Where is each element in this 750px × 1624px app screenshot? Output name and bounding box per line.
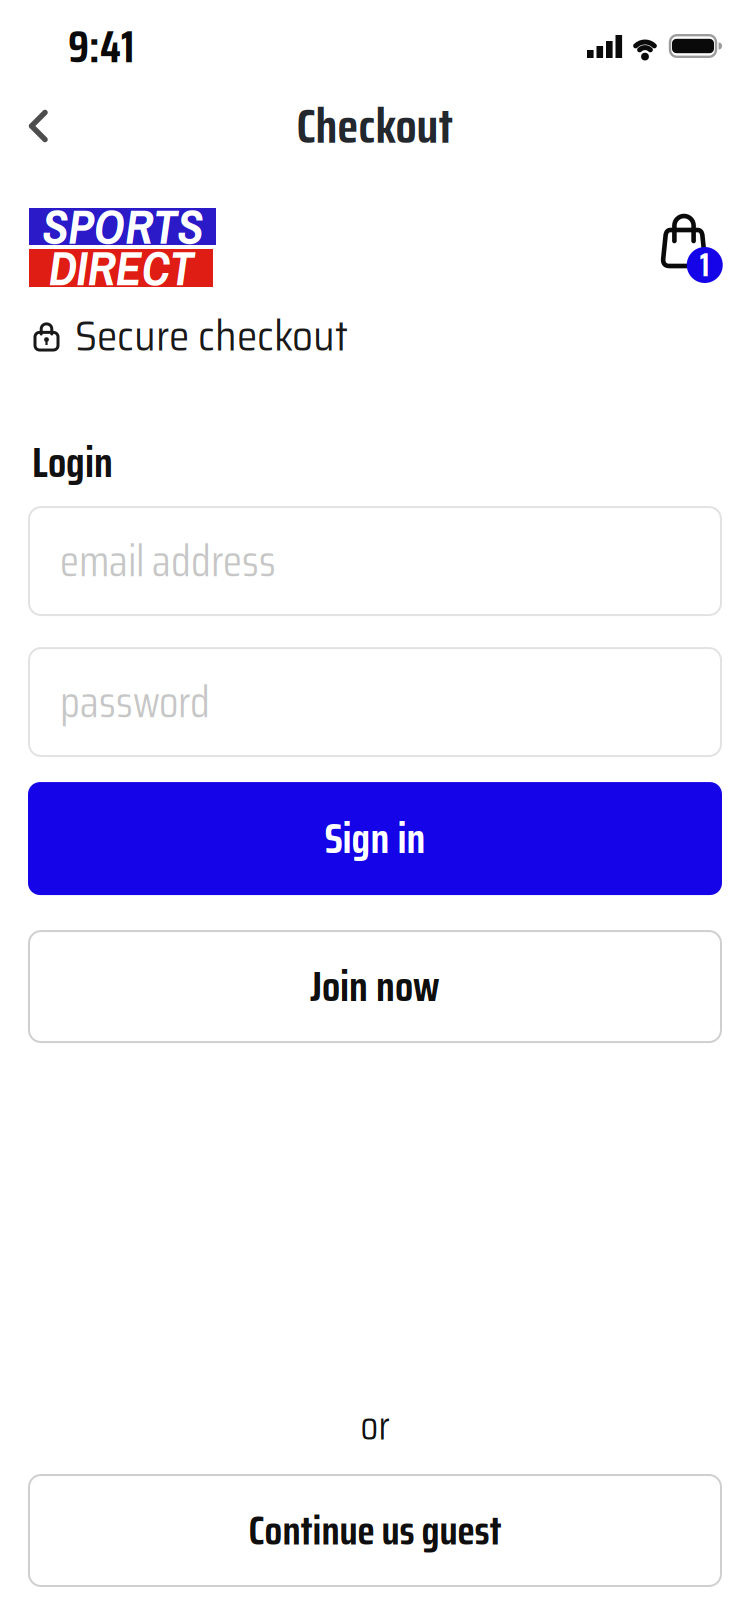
staticText: Login [32,430,113,495]
staticText: 9:41 [68,12,134,82]
staticText: Secure checkout [75,303,348,369]
staticText: Continue us guest [248,1499,501,1562]
staticText: SPORTS [42,194,203,259]
staticText: Join now [310,954,440,1019]
staticText: Checkout [296,88,453,164]
staticText: email address [60,526,276,596]
button[interactable]: Bag, 1 item [663,208,723,283]
staticText: DIRECT [48,236,193,300]
button[interactable]: Join now [28,930,722,1043]
button[interactable]: Sign in [28,782,722,895]
button[interactable]: Continue us guest [28,1474,722,1587]
staticText: 1 [700,240,710,290]
button[interactable]: Back [0,103,48,148]
staticText: Sign in [324,806,425,871]
staticText: password [60,667,210,737]
staticText: or [360,1394,389,1457]
